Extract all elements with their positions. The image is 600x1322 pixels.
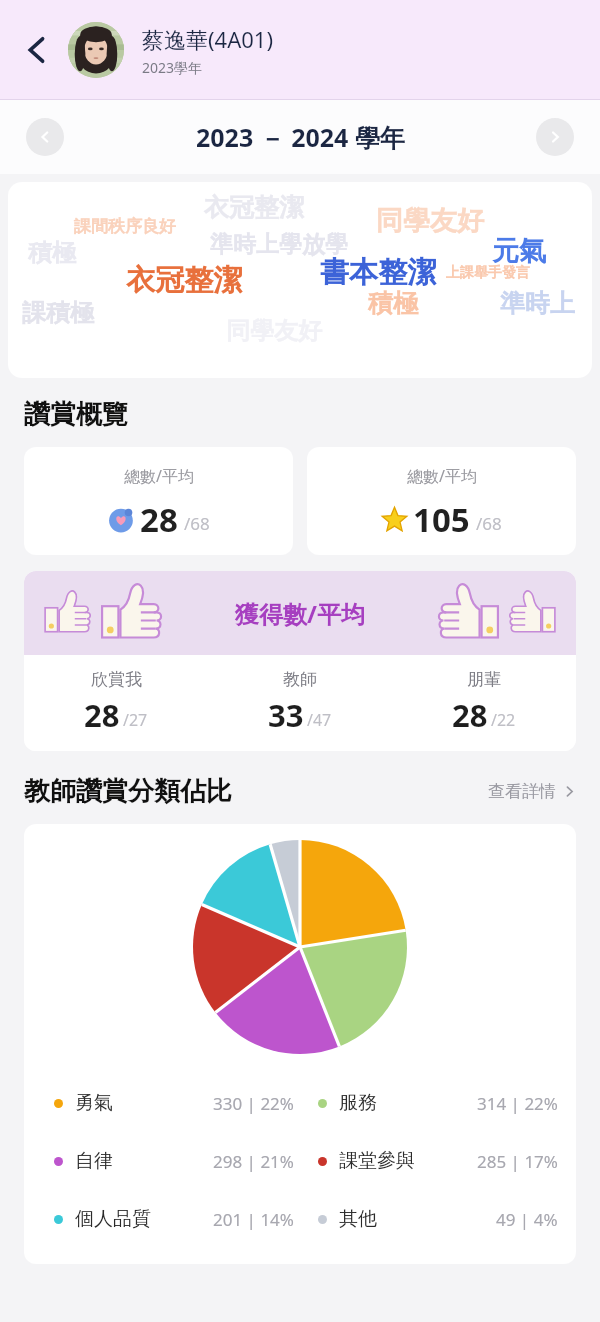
staticText: /22	[491, 709, 516, 731]
staticText: 教師	[283, 669, 317, 690]
button[interactable]: Previous year	[26, 118, 64, 156]
staticText: 準時上學放學	[210, 230, 348, 259]
staticText: 總數/平均	[407, 465, 477, 487]
staticText: 服務	[339, 1091, 377, 1115]
staticText: 積極	[368, 288, 418, 319]
staticText: 讚賞概覽	[24, 398, 128, 431]
staticText: 課積極	[22, 298, 94, 328]
button[interactable]: 服務	[300, 1074, 564, 1132]
staticText: 書本整潔	[320, 254, 436, 291]
staticText: 298 | 21%	[213, 1150, 294, 1173]
staticText: /68	[184, 512, 210, 535]
button[interactable]: 總數/平均	[24, 447, 293, 555]
staticText: 2023學年	[142, 58, 203, 77]
staticText: 元氣	[492, 234, 546, 268]
button[interactable]: Back	[12, 25, 62, 75]
button[interactable]: 課堂參與	[300, 1132, 564, 1190]
staticText: 330 | 22%	[213, 1092, 294, 1115]
staticText: 上課舉手發言	[446, 264, 530, 282]
staticText: /68	[476, 512, 502, 535]
staticText: 105	[413, 497, 470, 542]
staticText: 積極	[28, 238, 76, 268]
staticText: 28	[452, 694, 488, 736]
button[interactable]: 教師	[208, 655, 392, 751]
staticText: 285 | 17%	[477, 1150, 558, 1173]
staticText: 其他	[339, 1207, 377, 1231]
staticText: 49 | 4%	[496, 1208, 558, 1231]
button[interactable]: 其他	[300, 1190, 564, 1248]
button[interactable]: 衣冠整潔	[8, 182, 592, 378]
staticText: 欣賞我	[91, 669, 142, 690]
staticText: 課堂參與	[339, 1149, 415, 1173]
button[interactable]: 勇氣	[24, 824, 576, 1264]
button[interactable]: 獲得數/平均	[24, 571, 576, 751]
staticText: /47	[307, 709, 332, 731]
staticText: 教師讚賞分類佔比	[24, 775, 232, 808]
staticText: 準時上	[500, 288, 575, 319]
staticText: 同學友好	[226, 316, 322, 346]
staticText: 獲得數/平均	[235, 597, 365, 630]
staticText: 總數/平均	[124, 465, 194, 487]
staticText: 自律	[75, 1149, 113, 1173]
staticText: 朋輩	[467, 669, 501, 690]
staticText: 同學友好	[376, 204, 484, 238]
staticText: 201 | 14%	[213, 1208, 294, 1231]
staticText: 蔡逸華(4A01)	[142, 24, 274, 54]
button[interactable]: Student avatar	[68, 22, 124, 78]
button[interactable]: 查看詳情	[488, 781, 576, 802]
button[interactable]: Next year	[536, 118, 574, 156]
staticText: 查看詳情	[488, 781, 556, 802]
staticText: 28	[84, 694, 120, 736]
staticText: 2023 － 2024 學年	[196, 120, 405, 154]
staticText: 個人品質	[75, 1207, 151, 1231]
staticText: 衣冠整潔	[126, 262, 242, 299]
button[interactable]: 個人品質	[36, 1190, 300, 1248]
staticText: 33	[268, 694, 304, 736]
button[interactable]: 欣賞我	[24, 655, 208, 751]
staticText: /27	[123, 709, 148, 731]
staticText: 衣冠整潔	[204, 192, 304, 223]
button[interactable]: 朋輩	[392, 655, 576, 751]
button[interactable]: 總數/平均	[307, 447, 576, 555]
staticText: 勇氣	[75, 1091, 113, 1115]
staticText: 314 | 22%	[477, 1092, 558, 1115]
button[interactable]: 勇氣	[36, 1074, 300, 1132]
staticText: 課間秩序良好	[74, 216, 176, 237]
staticText: 28	[140, 497, 178, 542]
button[interactable]: 自律	[36, 1132, 300, 1190]
